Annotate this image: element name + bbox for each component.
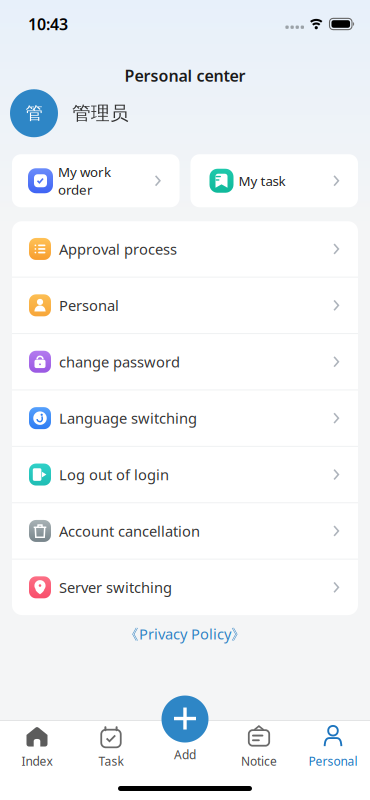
staticText: Account cancellation (59, 521, 200, 541)
staticText: Add (174, 746, 196, 762)
button[interactable]: Add (148, 713, 222, 780)
button[interactable]: 《Privacy Policy》 (124, 624, 246, 644)
button[interactable]: Notice (222, 725, 296, 769)
staticText: Personal center (124, 65, 245, 86)
staticText: Server switching (59, 578, 172, 597)
staticText: 管 (25, 103, 42, 124)
staticText: 10:43 (28, 13, 68, 35)
staticText: Task (98, 753, 123, 769)
staticText: Approval process (59, 239, 177, 259)
staticText: Index (21, 753, 52, 769)
staticText: change password (59, 352, 180, 371)
staticText: Log out of login (59, 465, 169, 484)
button[interactable]: change password (12, 334, 358, 389)
button[interactable]: Account cancellation (12, 503, 358, 559)
staticText: My work order (58, 163, 111, 198)
button[interactable]: Personal (12, 278, 358, 333)
button[interactable]: Language switching (12, 390, 358, 446)
staticText: Notice (241, 753, 277, 769)
button[interactable]: Personal (296, 725, 370, 769)
staticText: Personal (59, 296, 119, 315)
button[interactable]: Index (0, 725, 74, 769)
button[interactable]: Log out of login (12, 447, 358, 502)
button[interactable]: My work order (12, 154, 179, 207)
button[interactable]: Server switching (12, 560, 358, 615)
staticText: 管理员 (72, 102, 129, 125)
button[interactable]: My task (190, 154, 358, 207)
staticText: 《Privacy Policy》 (124, 624, 246, 644)
staticText: Personal (308, 753, 357, 769)
staticText: Language switching (59, 408, 197, 428)
staticText: My task (238, 172, 285, 190)
button[interactable]: Approval process (12, 221, 358, 277)
button[interactable]: Task (74, 725, 148, 769)
